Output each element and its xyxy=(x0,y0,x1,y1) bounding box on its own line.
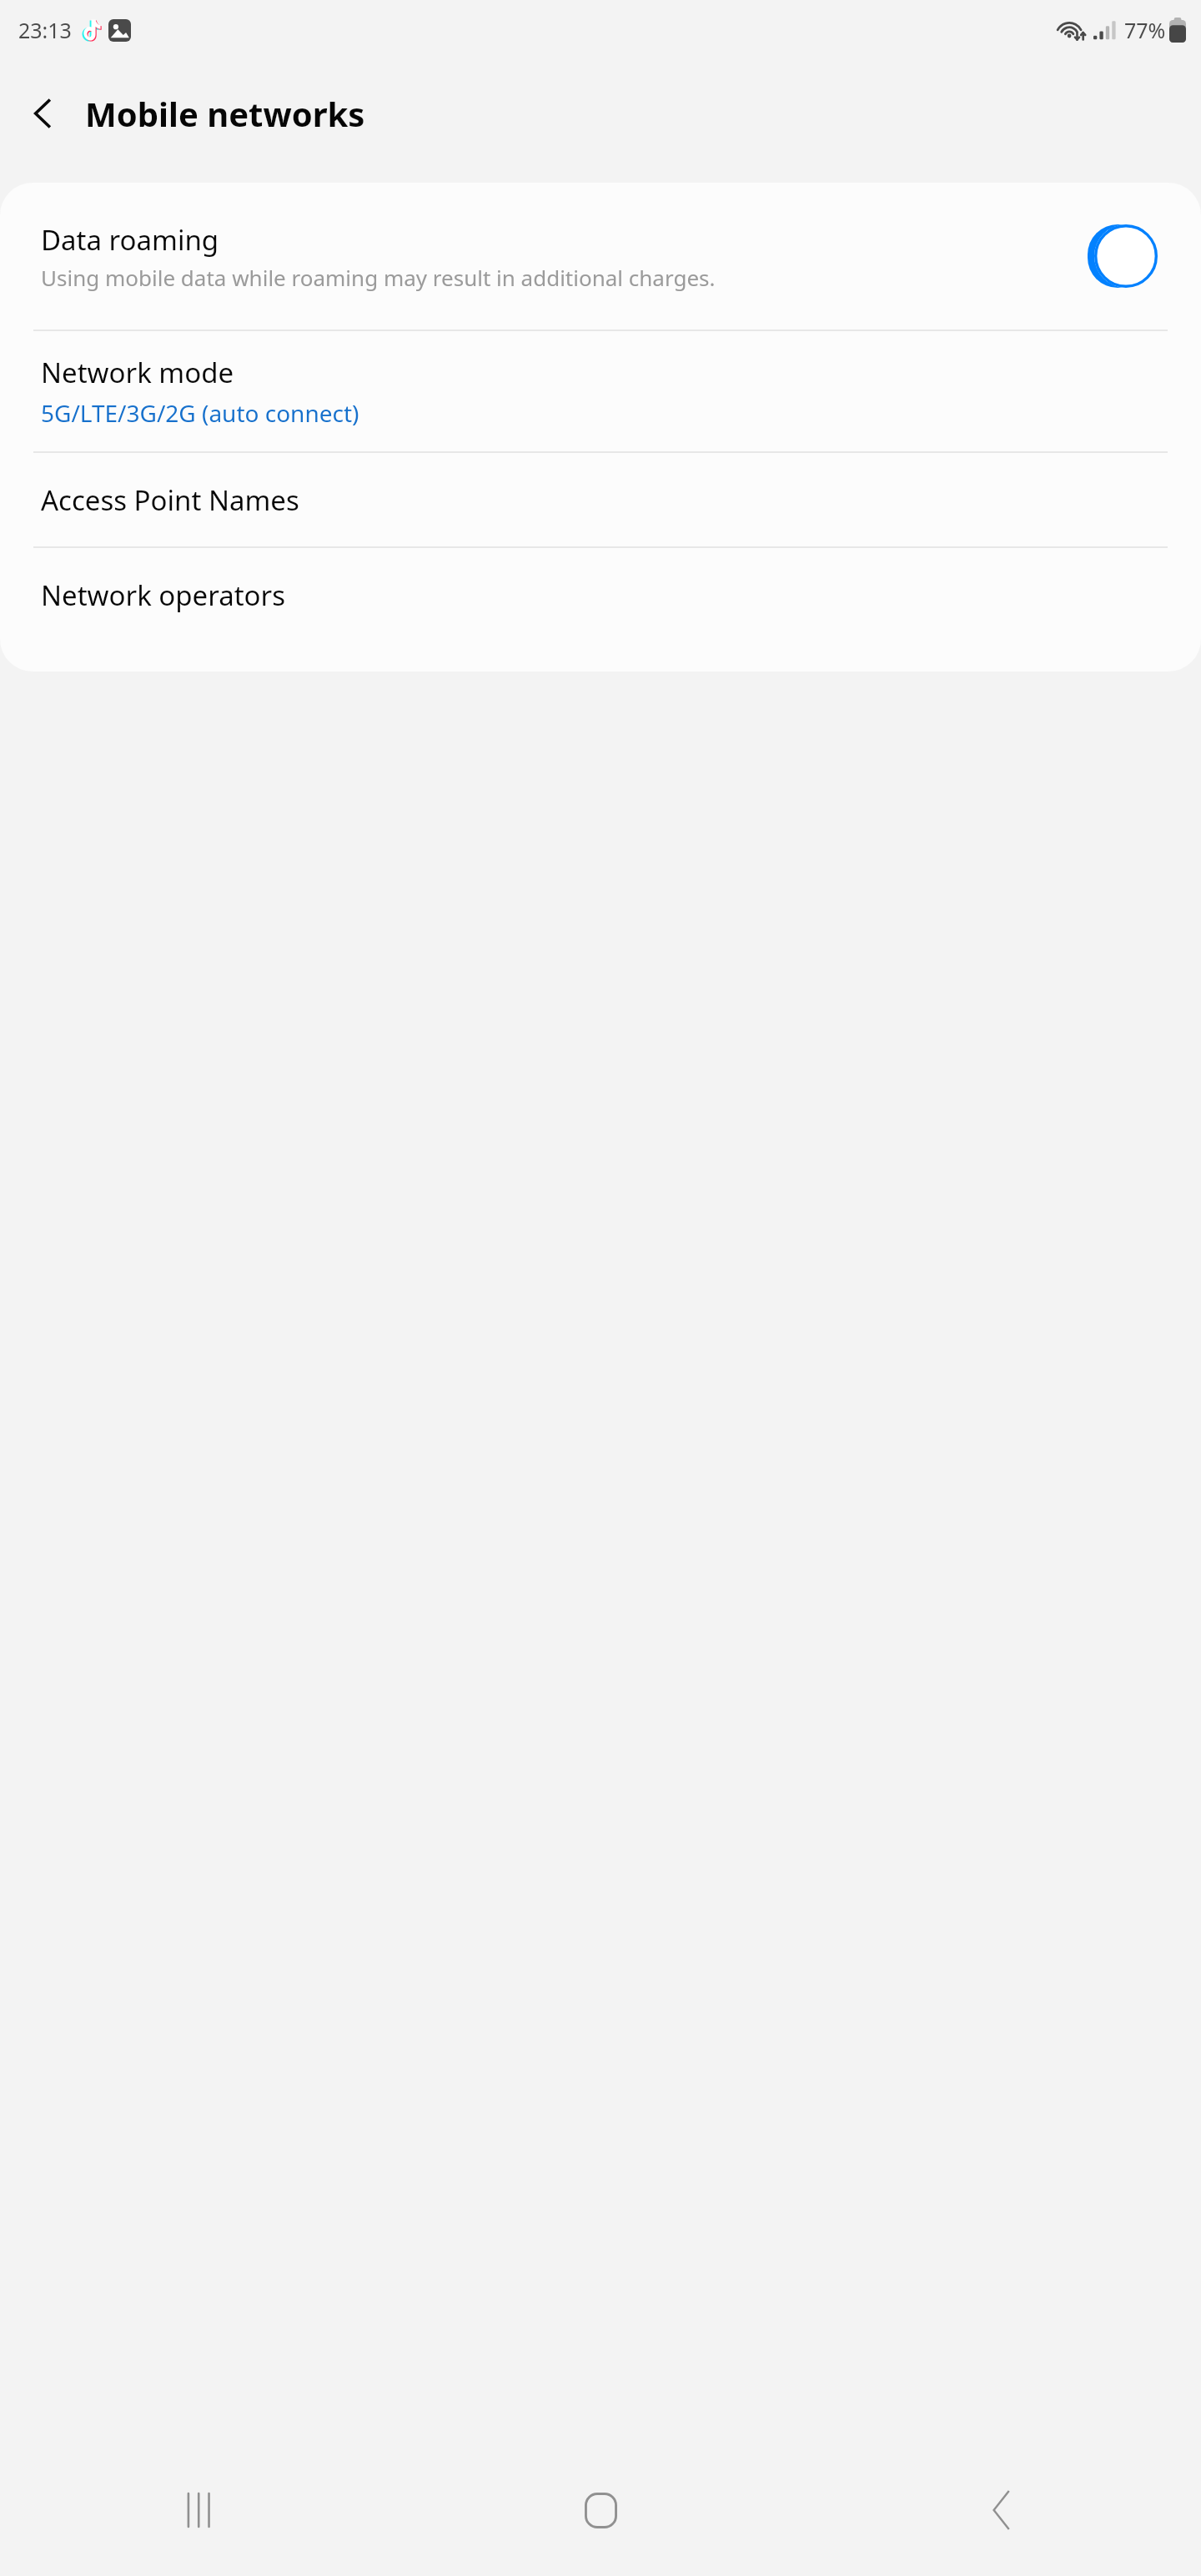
button[interactable]: Network operators xyxy=(0,548,1201,641)
button[interactable]: Data roaming toggle xyxy=(1084,223,1161,289)
button[interactable]: Home xyxy=(400,2444,801,2576)
staticText: 23:13 xyxy=(18,16,72,44)
staticText: 5G/LTE/3G/2G (auto connect) xyxy=(41,397,359,429)
button[interactable]: Recent apps xyxy=(0,2444,400,2576)
button[interactable]: Back xyxy=(801,2444,1201,2576)
staticText: Network operators xyxy=(41,576,286,614)
button[interactable]: Access Point Names xyxy=(0,453,1201,546)
staticText: Access Point Names xyxy=(41,481,299,519)
staticText: 77% xyxy=(1124,16,1166,44)
staticText: Network mode xyxy=(41,354,234,391)
button[interactable]: Back xyxy=(17,88,68,139)
staticText: Using mobile data while roaming may resu… xyxy=(41,263,716,292)
button[interactable]: Data roaming xyxy=(0,183,1201,330)
staticText: Mobile networks xyxy=(85,91,365,136)
staticText: Data roaming xyxy=(41,221,219,259)
button[interactable]: Network mode xyxy=(0,331,1201,451)
